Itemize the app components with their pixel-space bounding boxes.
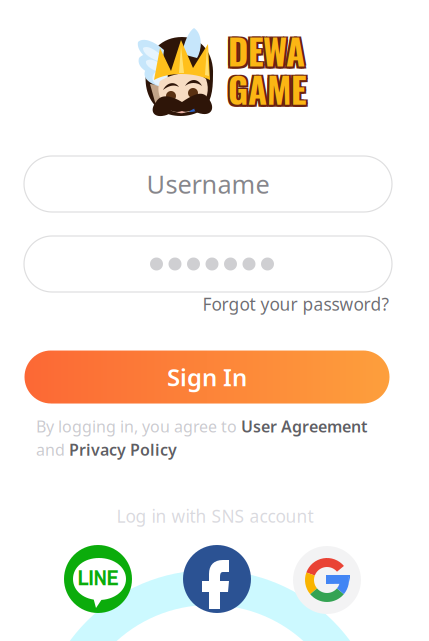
- button[interactable]: [24, 236, 392, 292]
- staticText: GAME: [226, 62, 304, 114]
- staticText: DEWA: [230, 24, 307, 75]
- staticText: Forgot your password?: [202, 292, 389, 315]
- staticText: and: [36, 439, 69, 460]
- staticText: Username: [146, 167, 269, 201]
- staticText: GAME: [230, 62, 308, 114]
- staticText: DEWA: [228, 27, 305, 78]
- staticText: LINE: [77, 562, 118, 592]
- staticText: DEWA: [228, 25, 305, 76]
- button[interactable]: Sign in with LINE: [64, 545, 132, 613]
- staticText: Privacy Policy: [69, 439, 177, 460]
- button[interactable]: Forgot your password?: [202, 292, 389, 315]
- staticText: User Agreement: [241, 416, 367, 437]
- button[interactable]: Sign in with Google: [293, 546, 361, 614]
- staticText: By logging in, you agree to: [36, 416, 241, 437]
- staticText: GAME: [228, 63, 306, 115]
- staticText: DEWA: [230, 27, 307, 78]
- button[interactable]: Username: [24, 156, 392, 212]
- staticText: Sign In: [167, 361, 247, 393]
- button[interactable]: Privacy Policy: [69, 439, 177, 460]
- button[interactable]: User Agreement: [241, 416, 367, 437]
- staticText: DEWA: [226, 27, 303, 78]
- staticText: GAME: [230, 65, 308, 117]
- button[interactable]: Sign in with Facebook: [183, 545, 251, 613]
- staticText: GAME: [226, 65, 304, 117]
- staticText: GAME: [228, 65, 306, 117]
- staticText: Log in with SNS account: [116, 504, 313, 527]
- staticText: DEWA: [226, 24, 303, 75]
- button[interactable]: Sign In: [24, 350, 389, 403]
